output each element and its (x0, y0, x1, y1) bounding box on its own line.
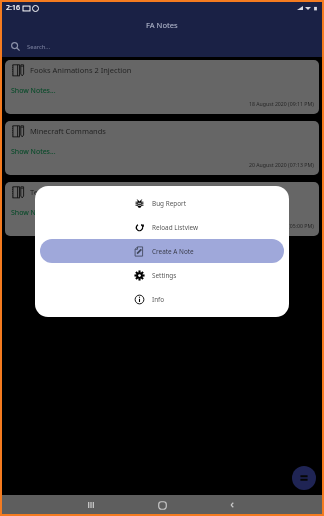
staticText: Fooks Animations 2 Injection (30, 65, 132, 75)
button[interactable]: Reload Listview (40, 215, 284, 239)
staticText: Show Notes... (11, 147, 56, 157)
button[interactable]: Minecraft Commands (5, 121, 319, 175)
staticText: Show Notes... (11, 86, 56, 96)
staticText: 18 August 2020 (09:11 PM) (249, 100, 314, 107)
staticText: Bug Report (152, 199, 187, 208)
staticText: Show Notes... (11, 208, 56, 218)
staticText: Settings (152, 271, 177, 280)
staticText: Test Note (30, 187, 64, 197)
button[interactable]: Create A Note (40, 239, 284, 263)
button[interactable]: Home (154, 497, 170, 513)
button[interactable]: Fooks Animations 2 Injection (5, 60, 319, 114)
staticText: Reload Listview (152, 223, 199, 232)
staticText: 2:16 (6, 3, 20, 13)
button[interactable]: Recents (83, 497, 99, 513)
staticText: Info (152, 295, 165, 304)
staticText: 20 August 2020 (07:13 PM) (249, 161, 314, 168)
button[interactable]: Settings (40, 263, 284, 287)
staticText: Search... (27, 43, 51, 51)
staticText: 21 August 2020 (05:00 PM) (249, 222, 314, 229)
button[interactable]: Test Note (5, 182, 319, 236)
staticText: FA Notes (146, 20, 178, 30)
staticText: Minecraft Commands (30, 126, 106, 136)
button[interactable]: Info (40, 287, 284, 311)
staticText: Create A Note (152, 247, 194, 256)
button[interactable]: Menu (292, 466, 316, 490)
button[interactable]: Bug Report (40, 191, 284, 215)
button[interactable]: Back (224, 497, 240, 513)
